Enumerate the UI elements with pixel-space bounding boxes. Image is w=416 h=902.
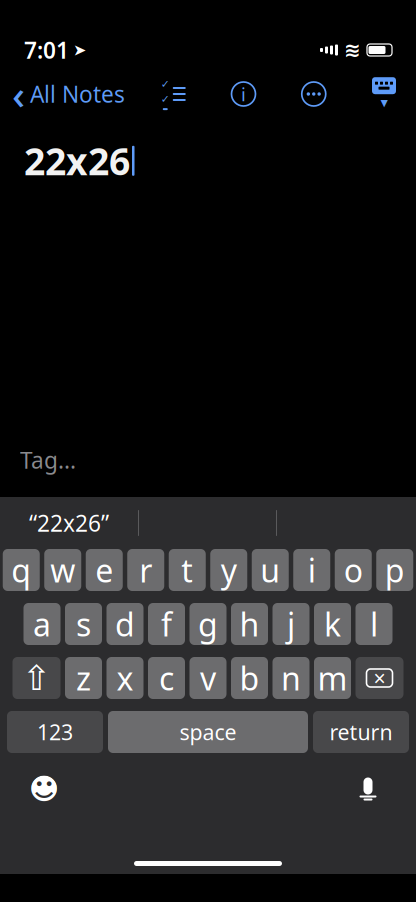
- staticText: f: [161, 603, 172, 645]
- staticText: v: [200, 657, 216, 699]
- staticText: ×: [373, 664, 385, 692]
- button[interactable]: g: [189, 603, 226, 645]
- staticText: i: [308, 549, 316, 591]
- button[interactable]: e: [86, 549, 123, 591]
- button[interactable]: Shift: [12, 657, 60, 699]
- staticText: 123: [37, 718, 73, 746]
- button[interactable]: return: [313, 711, 409, 753]
- button[interactable]: h: [231, 603, 268, 645]
- button[interactable]: More: [292, 72, 336, 116]
- button[interactable]: space: [108, 711, 308, 753]
- button[interactable]: o: [335, 549, 372, 591]
- staticText: m: [317, 657, 347, 699]
- button[interactable]: m: [314, 657, 351, 699]
- staticText: “22x26”: [29, 508, 109, 538]
- button[interactable]: Hide Keyboard: [362, 72, 416, 116]
- staticText: t: [181, 549, 193, 591]
- staticText: ⇧: [22, 658, 51, 698]
- button[interactable]: Emoji: [22, 767, 66, 811]
- staticText: ‹: [12, 67, 25, 120]
- button[interactable]: k: [314, 603, 351, 645]
- button[interactable]: p: [376, 549, 413, 591]
- button[interactable]: z: [65, 657, 102, 699]
- staticText: u: [260, 549, 280, 591]
- button[interactable]: u: [252, 549, 289, 591]
- button[interactable]: i: [293, 549, 330, 591]
- staticText: y: [221, 549, 237, 591]
- button[interactable]: “22x26”: [0, 501, 138, 545]
- staticText: p: [385, 549, 405, 591]
- staticText: r: [139, 549, 152, 591]
- staticText: ▾: [380, 94, 387, 111]
- staticText: return: [329, 718, 392, 746]
- button[interactable]: 123: [7, 711, 103, 753]
- staticText: ≋: [344, 39, 361, 61]
- staticText: x: [116, 657, 133, 699]
- staticText: k: [324, 603, 341, 645]
- button[interactable]: Delete: [355, 657, 403, 699]
- button[interactable]: r: [127, 549, 164, 591]
- staticText: b: [239, 657, 259, 699]
- staticText: ✓: [161, 78, 170, 90]
- button[interactable]: s: [65, 603, 102, 645]
- staticText: c: [159, 657, 174, 699]
- staticText: j: [287, 603, 295, 645]
- staticText: s: [76, 603, 91, 645]
- staticText: space: [179, 718, 236, 746]
- staticText: g: [198, 603, 218, 645]
- button[interactable]: a: [23, 603, 60, 645]
- staticText: o: [344, 549, 363, 591]
- staticText: ☺: [26, 769, 62, 809]
- staticText: ✓: [161, 93, 170, 105]
- staticText: All Notes: [30, 79, 125, 109]
- button[interactable]: Dictate: [346, 767, 390, 811]
- staticText: d: [115, 603, 135, 645]
- button[interactable]: w: [44, 549, 81, 591]
- staticText: i: [241, 82, 246, 106]
- button[interactable]: t: [169, 549, 206, 591]
- button[interactable]: b: [231, 657, 268, 699]
- button[interactable]: d: [106, 603, 143, 645]
- staticText: 7:01: [24, 35, 69, 65]
- button[interactable]: ‹: [0, 63, 125, 124]
- button[interactable]: Checklist: [151, 72, 195, 116]
- button[interactable]: y: [210, 549, 247, 591]
- staticText: ➤: [73, 41, 86, 59]
- staticText: 22x26: [24, 136, 130, 186]
- staticText: h: [239, 603, 259, 645]
- staticText: l: [370, 603, 378, 645]
- button[interactable]: q: [3, 549, 40, 591]
- staticText: Tag...: [20, 445, 76, 475]
- staticText: n: [281, 657, 301, 699]
- button[interactable]: v: [189, 657, 226, 699]
- button[interactable]: l: [355, 603, 392, 645]
- button[interactable]: n: [272, 657, 309, 699]
- staticText: a: [33, 603, 51, 645]
- staticText: w: [50, 549, 75, 591]
- button[interactable]: c: [148, 657, 185, 699]
- staticText: e: [95, 549, 113, 591]
- staticText: z: [76, 657, 91, 699]
- staticText: q: [11, 549, 31, 591]
- button[interactable]: x: [106, 657, 143, 699]
- button[interactable]: f: [148, 603, 185, 645]
- button[interactable]: j: [272, 603, 309, 645]
- button[interactable]: Info: [221, 72, 265, 116]
